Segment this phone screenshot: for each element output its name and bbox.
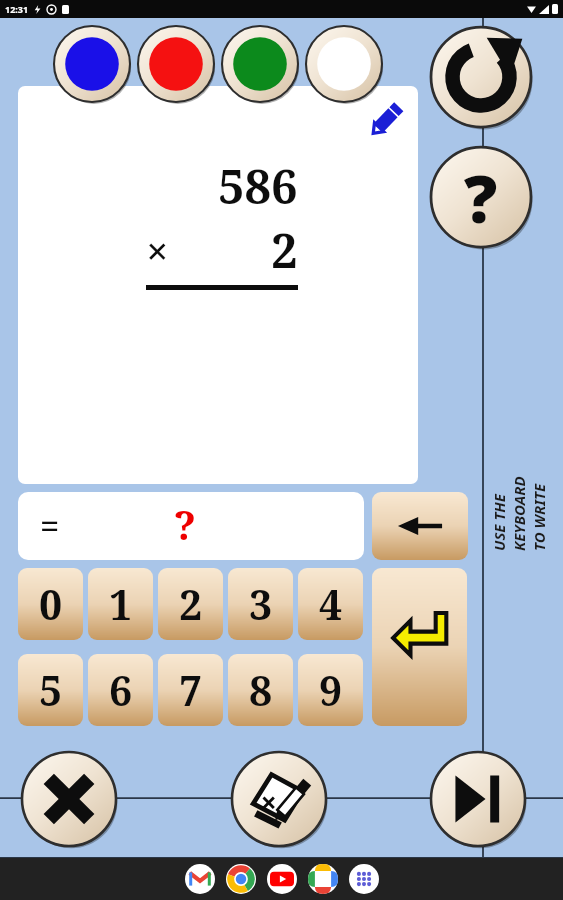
button[interactable]: 6: [88, 654, 153, 726]
button[interactable]: Blue pen: [54, 26, 130, 102]
button[interactable]: Photos: [308, 864, 338, 894]
button[interactable]: 1: [88, 568, 153, 640]
button[interactable]: Next: [431, 752, 525, 846]
button[interactable]: Green pen: [222, 26, 298, 102]
button[interactable]: 4: [298, 568, 363, 640]
staticText: 4: [319, 576, 343, 632]
button[interactable]: Apps: [349, 864, 379, 894]
staticText: 2: [179, 576, 203, 632]
button[interactable]: Help: [431, 147, 531, 247]
staticText: =: [40, 503, 60, 549]
staticText: 586: [218, 154, 298, 218]
staticText: ×: [146, 223, 169, 277]
button[interactable]: Cancel: [22, 752, 116, 846]
button[interactable]: 3: [228, 568, 293, 640]
button[interactable]: White pen: [306, 26, 382, 102]
button[interactable]: YouTube: [267, 864, 297, 894]
staticText: 12:31: [5, 3, 29, 15]
staticText: 2: [271, 218, 298, 282]
button[interactable]: 2: [158, 568, 223, 640]
button[interactable]: Enter: [372, 568, 467, 726]
button[interactable]: Draw: [366, 100, 406, 140]
staticText: 9: [319, 662, 343, 718]
button[interactable]: 9: [298, 654, 363, 726]
staticText: 0: [39, 576, 63, 632]
button[interactable]: Draw: [18, 86, 418, 484]
staticText: 1: [109, 576, 133, 632]
button[interactable]: 8: [228, 654, 293, 726]
staticText: 8: [249, 662, 273, 718]
staticText: 7: [179, 662, 203, 718]
button[interactable]: =: [18, 492, 364, 560]
button[interactable]: Chrome: [226, 864, 256, 894]
button[interactable]: 7: [158, 654, 223, 726]
staticText: 5: [39, 662, 63, 718]
staticText: 6: [109, 662, 133, 718]
button[interactable]: 5: [18, 654, 83, 726]
button[interactable]: Red pen: [138, 26, 214, 102]
button[interactable]: Gmail: [185, 864, 215, 894]
staticText: USE THE KEYBOARD TO WRITE AND VALIDATE T…: [489, 475, 555, 551]
staticText: ?: [464, 152, 498, 242]
staticText: ?: [174, 497, 196, 551]
staticText: 3: [249, 576, 273, 632]
button[interactable]: Backspace: [372, 492, 468, 560]
button[interactable]: 0: [18, 568, 83, 640]
button[interactable]: Refresh: [431, 27, 531, 127]
button[interactable]: Notepad: [232, 752, 326, 846]
